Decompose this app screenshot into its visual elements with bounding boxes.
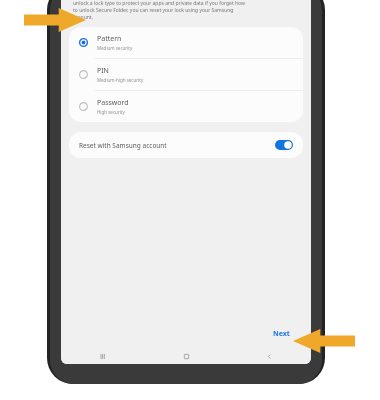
- staticText: Reset with Samsung account: [79, 141, 275, 150]
- button[interactable]: Reset with Samsung account: [69, 132, 303, 158]
- staticText: High security: [97, 109, 125, 115]
- button[interactable]: Password: [69, 91, 303, 122]
- staticText: unlock a lock type to protect your apps …: [73, 0, 245, 7]
- button[interactable]: Recent apps: [61, 348, 145, 364]
- staticText: to unlock Secure Folder, you can reset y…: [73, 7, 234, 14]
- button[interactable]: Back: [228, 348, 311, 364]
- button[interactable]: Pattern: [69, 27, 303, 58]
- staticText: Medium-high security: [97, 77, 144, 83]
- button[interactable]: Home: [145, 348, 228, 364]
- button[interactable]: PIN: [69, 59, 303, 90]
- staticText: Medium security: [97, 45, 133, 51]
- staticText: Next: [273, 329, 290, 339]
- staticText: PIN: [97, 66, 109, 76]
- staticText: Password: [97, 98, 129, 108]
- staticText: Pattern: [97, 34, 122, 44]
- button[interactable]: Next: [268, 326, 295, 342]
- staticText: account.: [73, 14, 93, 21]
